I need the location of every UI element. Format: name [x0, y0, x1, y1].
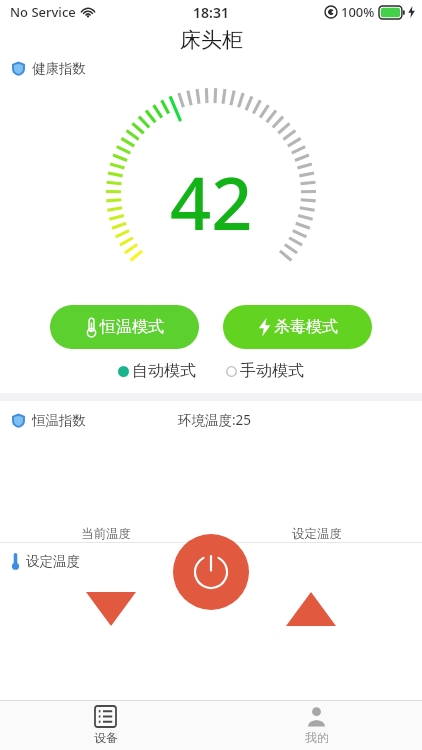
button[interactable]: 25	[211, 437, 422, 542]
staticText: 环境温度:25	[178, 411, 252, 429]
staticText: 42	[170, 153, 253, 251]
button[interactable]: Increase temperature	[286, 592, 336, 626]
button[interactable]: 我的	[211, 701, 422, 750]
button[interactable]: Power	[173, 534, 249, 610]
staticText: 我的	[305, 730, 329, 745]
staticText: 100%	[341, 3, 375, 21]
button[interactable]: 手动模式	[224, 359, 306, 383]
staticText: 床头柜	[180, 27, 243, 53]
button[interactable]: 恒温模式	[50, 305, 199, 349]
button[interactable]: 杀毒模式	[223, 305, 372, 349]
staticText: 恒温指数	[32, 412, 86, 429]
staticText: 当前温度	[81, 526, 131, 542]
button[interactable]: 自动模式	[116, 359, 198, 383]
staticText: No Service	[10, 3, 76, 21]
staticText: 设定温度	[292, 526, 342, 542]
staticText: 设定温度	[26, 553, 80, 570]
staticText: 设备	[94, 730, 118, 745]
staticText: 自动模式	[132, 361, 196, 381]
staticText: 杀毒模式	[274, 317, 338, 337]
staticText: 健康指数	[32, 60, 86, 77]
staticText: 手动模式	[240, 361, 304, 381]
button[interactable]: 25	[0, 437, 211, 542]
staticText: 恒温模式	[100, 317, 164, 337]
staticText: 18:31	[193, 3, 229, 22]
button[interactable]: 设备	[0, 701, 211, 750]
button[interactable]: Decrease temperature	[86, 592, 136, 626]
